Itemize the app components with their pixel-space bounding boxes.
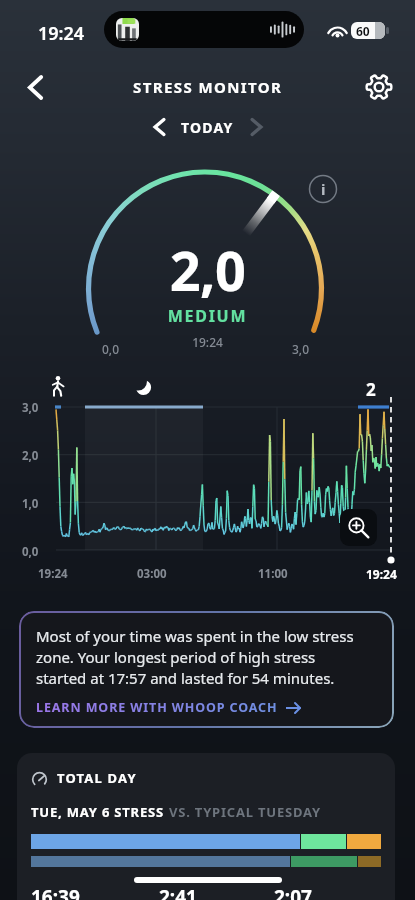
staticText: 19:24 [366, 566, 397, 582]
staticText: LEARN MORE WITH WHOOP COACH [36, 699, 278, 716]
staticText: 3,0 [22, 400, 39, 416]
staticText: VS. TYPICAL TUESDAY [169, 803, 321, 821]
button[interactable]: Info [308, 174, 338, 204]
staticText: Most of your time was spent in the low s… [36, 626, 358, 689]
staticText: TUE, MAY 6 STRESS [31, 803, 169, 821]
staticText: TODAY [181, 118, 234, 137]
staticText: 11:00 [258, 566, 288, 582]
button[interactable]: Zoom in [340, 509, 377, 546]
staticText: 0,0 [102, 341, 120, 357]
staticText: 2,0 [0, 233, 415, 307]
staticText: STRESS MONITOR [133, 77, 283, 97]
staticText: 03:00 [137, 566, 167, 582]
staticText: 19:24 [38, 566, 68, 582]
staticText: 2:41 [159, 884, 197, 900]
staticText: 16:39 [31, 884, 80, 900]
button[interactable]: Settings [356, 64, 402, 110]
staticText: 19:24 [38, 21, 85, 46]
button[interactable]: Next day [240, 111, 272, 143]
staticText: 3,0 [292, 341, 310, 357]
staticText: 2:07 [274, 884, 312, 900]
button[interactable]: Previous day [143, 111, 175, 143]
staticText: 19:24 [0, 334, 415, 350]
staticText: 0,0 [22, 544, 39, 560]
staticText: 60 [356, 23, 370, 39]
button[interactable]: Back [12, 64, 58, 110]
button[interactable]: Most of your time was spent in the low s… [19, 611, 394, 728]
staticText: i [321, 179, 326, 199]
staticText: TOTAL DAY [57, 769, 137, 787]
staticText: 1,0 [22, 496, 39, 512]
staticText: 2 [366, 378, 376, 401]
staticText: 2,0 [22, 448, 39, 464]
staticText: MEDIUM [0, 305, 415, 327]
